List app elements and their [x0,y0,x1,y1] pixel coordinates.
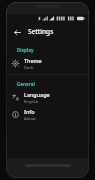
button[interactable]: Theme [7,55,88,72]
staticText: Theme [24,57,42,64]
staticText: General [17,81,35,87]
staticText: Info [24,108,35,115]
staticText: Display [17,47,34,53]
button[interactable]: Back [10,25,24,39]
staticText: Settings [28,27,54,36]
staticText: Language [24,91,50,98]
button[interactable]: Language [7,89,88,106]
button[interactable]: Info [7,106,88,123]
staticText: About [24,116,36,122]
staticText: English [24,99,39,105]
staticText: Dark [24,65,34,71]
